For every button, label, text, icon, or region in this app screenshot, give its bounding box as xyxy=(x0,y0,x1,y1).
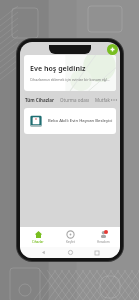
staticText: Cihazlarınızı eklemek için evinize bir k… xyxy=(30,77,110,82)
button[interactable]: Cihazlar xyxy=(23,227,53,247)
button[interactable]: Keşfet xyxy=(55,227,85,247)
staticText: Cihazlar xyxy=(32,240,44,244)
staticText: Tüm Cihazlar xyxy=(25,97,54,103)
button[interactable]: Cihaz ekle xyxy=(107,44,118,55)
button[interactable]: Mutfak xyxy=(95,97,110,103)
button[interactable]: Tüm Cihazlar xyxy=(25,97,55,103)
staticText: Mutfak xyxy=(95,97,110,103)
button[interactable]: Son uygulamalar xyxy=(93,249,100,256)
button[interactable]: Eve hoş geldiniz xyxy=(24,55,116,91)
button[interactable]: Geri xyxy=(40,249,47,256)
button[interactable]: Hesabım xyxy=(88,227,118,247)
staticText: Keşfet xyxy=(66,240,75,244)
button[interactable]: Daha fazla xyxy=(110,96,115,104)
button[interactable]: Ana ekran xyxy=(67,249,74,256)
staticText: Eve hoş geldiniz xyxy=(30,64,86,74)
staticText: Hesabım xyxy=(97,240,110,244)
staticText: Oturma odası xyxy=(60,97,90,103)
staticText: Beko Akıllı Evin Hayvan Besleyici xyxy=(48,118,113,124)
button[interactable]: Beko Akıllı Evin Hayvan Besleyici xyxy=(24,108,116,134)
button[interactable]: Oturma odası xyxy=(60,97,90,103)
